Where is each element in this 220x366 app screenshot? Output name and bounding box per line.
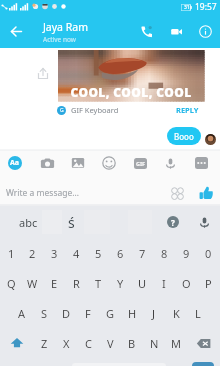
button[interactable]: J — [143, 298, 165, 328]
button[interactable]: 2 — [22, 238, 43, 268]
button[interactable]: U — [131, 268, 153, 298]
button[interactable]: Z — [33, 328, 55, 358]
button[interactable]: COOL, COOL, COOL — [58, 50, 204, 101]
button[interactable]: O — [175, 268, 197, 298]
staticText: A — [18, 306, 26, 321]
staticText: O — [182, 276, 191, 291]
staticText: G — [60, 107, 64, 114]
staticText: 5 — [95, 246, 102, 261]
button[interactable]: Voice input — [192, 206, 216, 238]
staticText: K — [173, 306, 180, 321]
button[interactable]: Y — [109, 268, 131, 298]
button[interactable]: 1 — [1, 238, 22, 268]
staticText: I — [162, 276, 166, 291]
button[interactable]: H — [121, 298, 143, 328]
staticText: 0 — [205, 246, 212, 261]
button[interactable]: Booo — [167, 127, 201, 145]
button[interactable]: 6 — [109, 238, 131, 268]
staticText: Q — [7, 276, 16, 291]
staticText: F — [85, 306, 91, 321]
button[interactable]: E — [43, 268, 65, 298]
button[interactable]: Stickers — [96, 150, 122, 176]
staticText: S — [41, 306, 48, 321]
staticText: 3 — [51, 246, 58, 261]
button[interactable]: P — [197, 268, 219, 298]
button[interactable]: Back — [3, 18, 29, 44]
staticText: 31 — [184, 4, 190, 11]
staticText: B — [128, 336, 136, 351]
button[interactable]: B — [121, 328, 143, 358]
staticText: V — [107, 336, 114, 351]
staticText: U — [138, 276, 147, 291]
button[interactable]: 3 — [43, 238, 65, 268]
button[interactable]: Info — [193, 19, 217, 43]
button[interactable]: 9 — [175, 238, 197, 268]
button[interactable]: Q — [1, 268, 22, 298]
staticText: Active now — [43, 35, 76, 44]
staticText: REPLY — [176, 105, 199, 115]
button[interactable]: G — [99, 298, 121, 328]
button[interactable]: W — [22, 268, 43, 298]
button[interactable]: T — [87, 268, 109, 298]
staticText: X — [63, 336, 70, 351]
button[interactable]: A — [11, 298, 33, 328]
button[interactable]: Share — [33, 64, 53, 84]
button[interactable]: D — [55, 298, 77, 328]
button[interactable]: X — [55, 328, 77, 358]
button[interactable]: 5 — [87, 238, 109, 268]
staticText: COOL, COOL, COOL — [70, 84, 192, 100]
staticText: 1 — [8, 246, 15, 261]
staticText: G — [106, 306, 115, 321]
staticText: Z — [41, 336, 48, 351]
button[interactable]: Enter — [192, 362, 214, 366]
staticText: J — [152, 306, 156, 321]
button[interactable]: L — [187, 298, 209, 328]
button[interactable]: I — [153, 268, 175, 298]
button[interactable]: 7 — [131, 238, 153, 268]
button[interactable]: Call — [134, 19, 158, 43]
button[interactable]: Camera — [34, 150, 60, 176]
button[interactable]: 8 — [153, 238, 175, 268]
button[interactable]: abc — [10, 206, 46, 238]
button[interactable]: K — [165, 298, 187, 328]
staticText: 4 — [73, 246, 80, 261]
button[interactable]: Language — [58, 206, 84, 238]
button[interactable]: More — [188, 150, 214, 176]
staticText: W — [27, 276, 38, 291]
button[interactable]: F — [77, 298, 99, 328]
staticText: R — [73, 276, 80, 291]
button[interactable]: Photos — [65, 150, 91, 176]
staticText: ? — [171, 217, 175, 228]
staticText: P — [205, 276, 212, 291]
staticText: GIF Keyboard — [71, 105, 119, 115]
staticText: Y — [117, 276, 124, 291]
button[interactable]: 0 — [197, 238, 219, 268]
button[interactable]: V — [99, 328, 121, 358]
staticText: Write a message… — [6, 187, 79, 199]
button[interactable]: Help — [161, 206, 185, 238]
button[interactable]: S — [33, 298, 55, 328]
button[interactable]: N — [143, 328, 165, 358]
button[interactable]: Stickers — [164, 180, 190, 206]
button[interactable]: R — [65, 268, 87, 298]
button[interactable]: Video call — [164, 19, 188, 43]
button[interactable]: M — [165, 328, 187, 358]
staticText: H — [128, 306, 137, 321]
button[interactable]: C — [77, 328, 99, 358]
button[interactable]: Shift — [0, 328, 33, 358]
button[interactable]: 4 — [65, 238, 87, 268]
button[interactable]: Backspace — [187, 328, 220, 358]
staticText: 2 — [29, 246, 36, 261]
button[interactable]: GIF — [127, 150, 153, 176]
staticText: M — [171, 336, 181, 351]
staticText: D — [62, 306, 71, 321]
staticText: Booo — [174, 131, 194, 142]
staticText: 7 — [139, 246, 146, 261]
button[interactable]: REPLY — [176, 103, 199, 117]
button[interactable]: Text formatting — [2, 150, 28, 176]
staticText: abc — [19, 215, 38, 230]
button[interactable]: Voice message — [157, 150, 183, 176]
staticText: E — [51, 276, 58, 291]
button[interactable]: Like — [193, 180, 219, 206]
